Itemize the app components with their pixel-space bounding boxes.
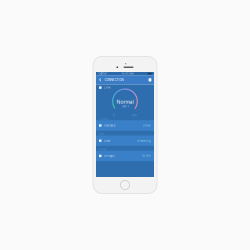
staticText: 13.15V xyxy=(142,154,151,157)
staticText: 100 xyxy=(132,114,137,117)
button[interactable]: State xyxy=(96,135,154,146)
staticText: Level 3 xyxy=(121,105,128,108)
button[interactable]: Voltage xyxy=(96,151,154,161)
staticText: CONNECTION xyxy=(105,78,124,82)
staticText: Voltage xyxy=(99,148,106,151)
button[interactable]: Options xyxy=(149,78,151,81)
staticText: Link xyxy=(104,86,110,89)
staticText: Normal xyxy=(116,99,133,105)
button[interactable]: Accessed xyxy=(96,120,154,131)
staticText: 9:41 AM xyxy=(122,72,133,75)
staticText: 0 xyxy=(113,114,115,117)
staticText: 2586 xyxy=(143,124,151,127)
staticText: State xyxy=(104,139,111,142)
button[interactable]: Back xyxy=(99,78,102,82)
staticText: State xyxy=(99,133,104,135)
button[interactable]: Link xyxy=(96,84,154,91)
staticText: Carrier xyxy=(98,72,107,75)
staticText: Searching xyxy=(137,139,151,142)
staticText: Accessed xyxy=(104,124,116,127)
staticText: Voltage xyxy=(104,154,115,157)
